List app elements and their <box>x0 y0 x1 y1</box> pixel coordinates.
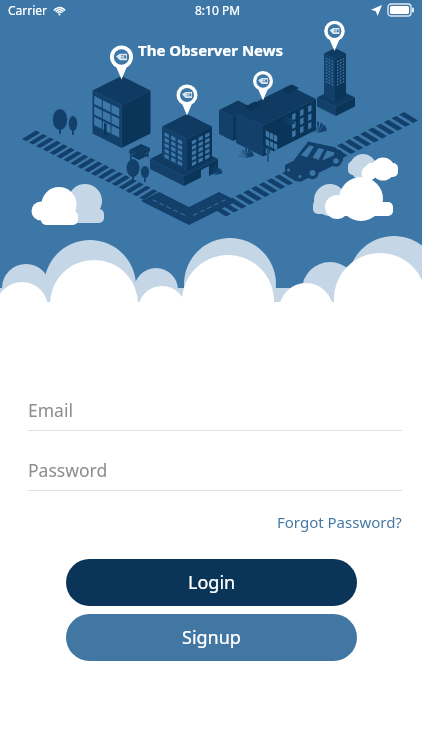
staticText: The Observer News <box>138 40 284 60</box>
staticText: Signup <box>182 625 241 650</box>
button[interactable]: Forgot Password? <box>275 510 404 534</box>
other: Location <box>371 5 382 16</box>
button[interactable]: Login <box>66 559 357 606</box>
button[interactable]: Signup <box>66 614 357 661</box>
staticText: Password <box>28 458 108 482</box>
staticText: Login <box>188 570 236 595</box>
staticText: Email <box>28 398 73 422</box>
staticText: 8:10 PM <box>195 2 241 18</box>
staticText: Carrier <box>8 2 48 18</box>
staticText: Forgot Password? <box>277 512 402 532</box>
